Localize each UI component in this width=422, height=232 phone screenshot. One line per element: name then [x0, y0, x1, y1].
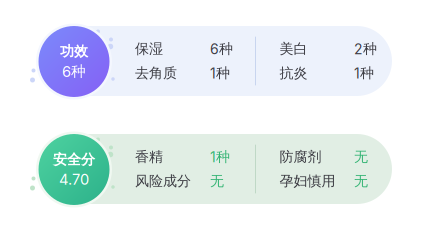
staticText: 2种	[354, 40, 377, 58]
staticText: 去角质	[135, 64, 177, 82]
staticText: 无	[354, 172, 368, 190]
staticText: 4.70	[59, 170, 89, 188]
button[interactable]: 香精	[0, 134, 422, 204]
staticText: 抗炎	[279, 64, 307, 82]
staticText: 防腐剂	[279, 148, 321, 166]
staticText: 孕妇慎用	[279, 172, 335, 190]
staticText: 安全分	[53, 151, 95, 168]
button[interactable]: 保湿	[0, 26, 422, 96]
staticText: 1种	[354, 64, 374, 82]
staticText: 无	[210, 172, 224, 190]
staticText: 风险成分	[135, 172, 191, 190]
staticText: 1种	[210, 64, 230, 82]
staticText: 无	[354, 148, 368, 166]
staticText: 美白	[279, 40, 307, 58]
staticText: 1种	[210, 148, 230, 166]
staticText: 功效	[60, 42, 88, 60]
staticText: 保湿	[135, 40, 163, 58]
staticText: 香精	[135, 148, 163, 166]
staticText: 6种	[62, 62, 86, 81]
staticText: 6种	[210, 40, 233, 58]
